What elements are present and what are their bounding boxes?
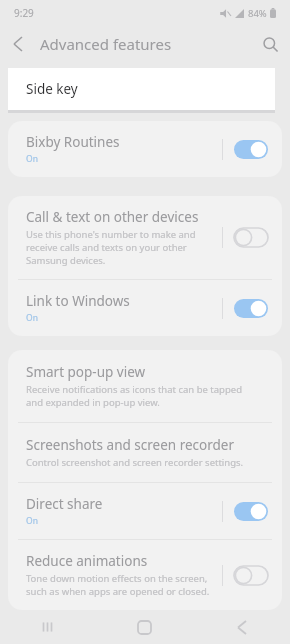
button[interactable]: Screenshots and screen recorder — [8, 423, 282, 482]
button[interactable]: Home — [96, 610, 193, 644]
staticText: Bixby Routines — [26, 133, 120, 151]
staticText: Use this phone's number to make and rece… — [26, 228, 196, 267]
button[interactable]: Call & text on other devices — [8, 196, 282, 279]
staticText: Tone down motion effects on the screen, … — [26, 572, 210, 598]
button[interactable]: Smart pop-up view — [8, 350, 282, 422]
staticText: On — [26, 312, 38, 324]
staticText: On — [26, 153, 38, 165]
button[interactable]: Reduce animations — [8, 540, 282, 610]
button[interactable]: Back — [193, 610, 290, 644]
staticText: Control screenshot and screen recorder s… — [26, 456, 244, 469]
staticText: Call & text on other devices — [26, 208, 199, 226]
staticText: Smart pop-up view — [26, 363, 146, 381]
button[interactable]: Link to Windows — [8, 280, 282, 336]
staticText: 84% — [248, 7, 267, 20]
button[interactable]: Side key — [8, 68, 275, 110]
button[interactable]: Bixby Routines — [8, 121, 282, 177]
staticText: Link to Windows — [26, 292, 130, 310]
staticText: On — [26, 515, 38, 527]
button[interactable]: Search — [250, 26, 290, 62]
button[interactable]: Back — [0, 26, 36, 62]
staticText: Screenshots and screen recorder — [26, 436, 235, 454]
staticText: Receive notifications as icons that can … — [26, 383, 242, 409]
staticText: Reduce animations — [26, 552, 148, 570]
staticText: Side key — [26, 80, 78, 98]
button[interactable]: Recent apps — [0, 610, 96, 644]
staticText: Advanced features — [40, 34, 172, 54]
button[interactable]: Direct share — [8, 483, 282, 539]
staticText: Direct share — [26, 495, 103, 513]
staticText: 9:29 — [14, 6, 34, 20]
